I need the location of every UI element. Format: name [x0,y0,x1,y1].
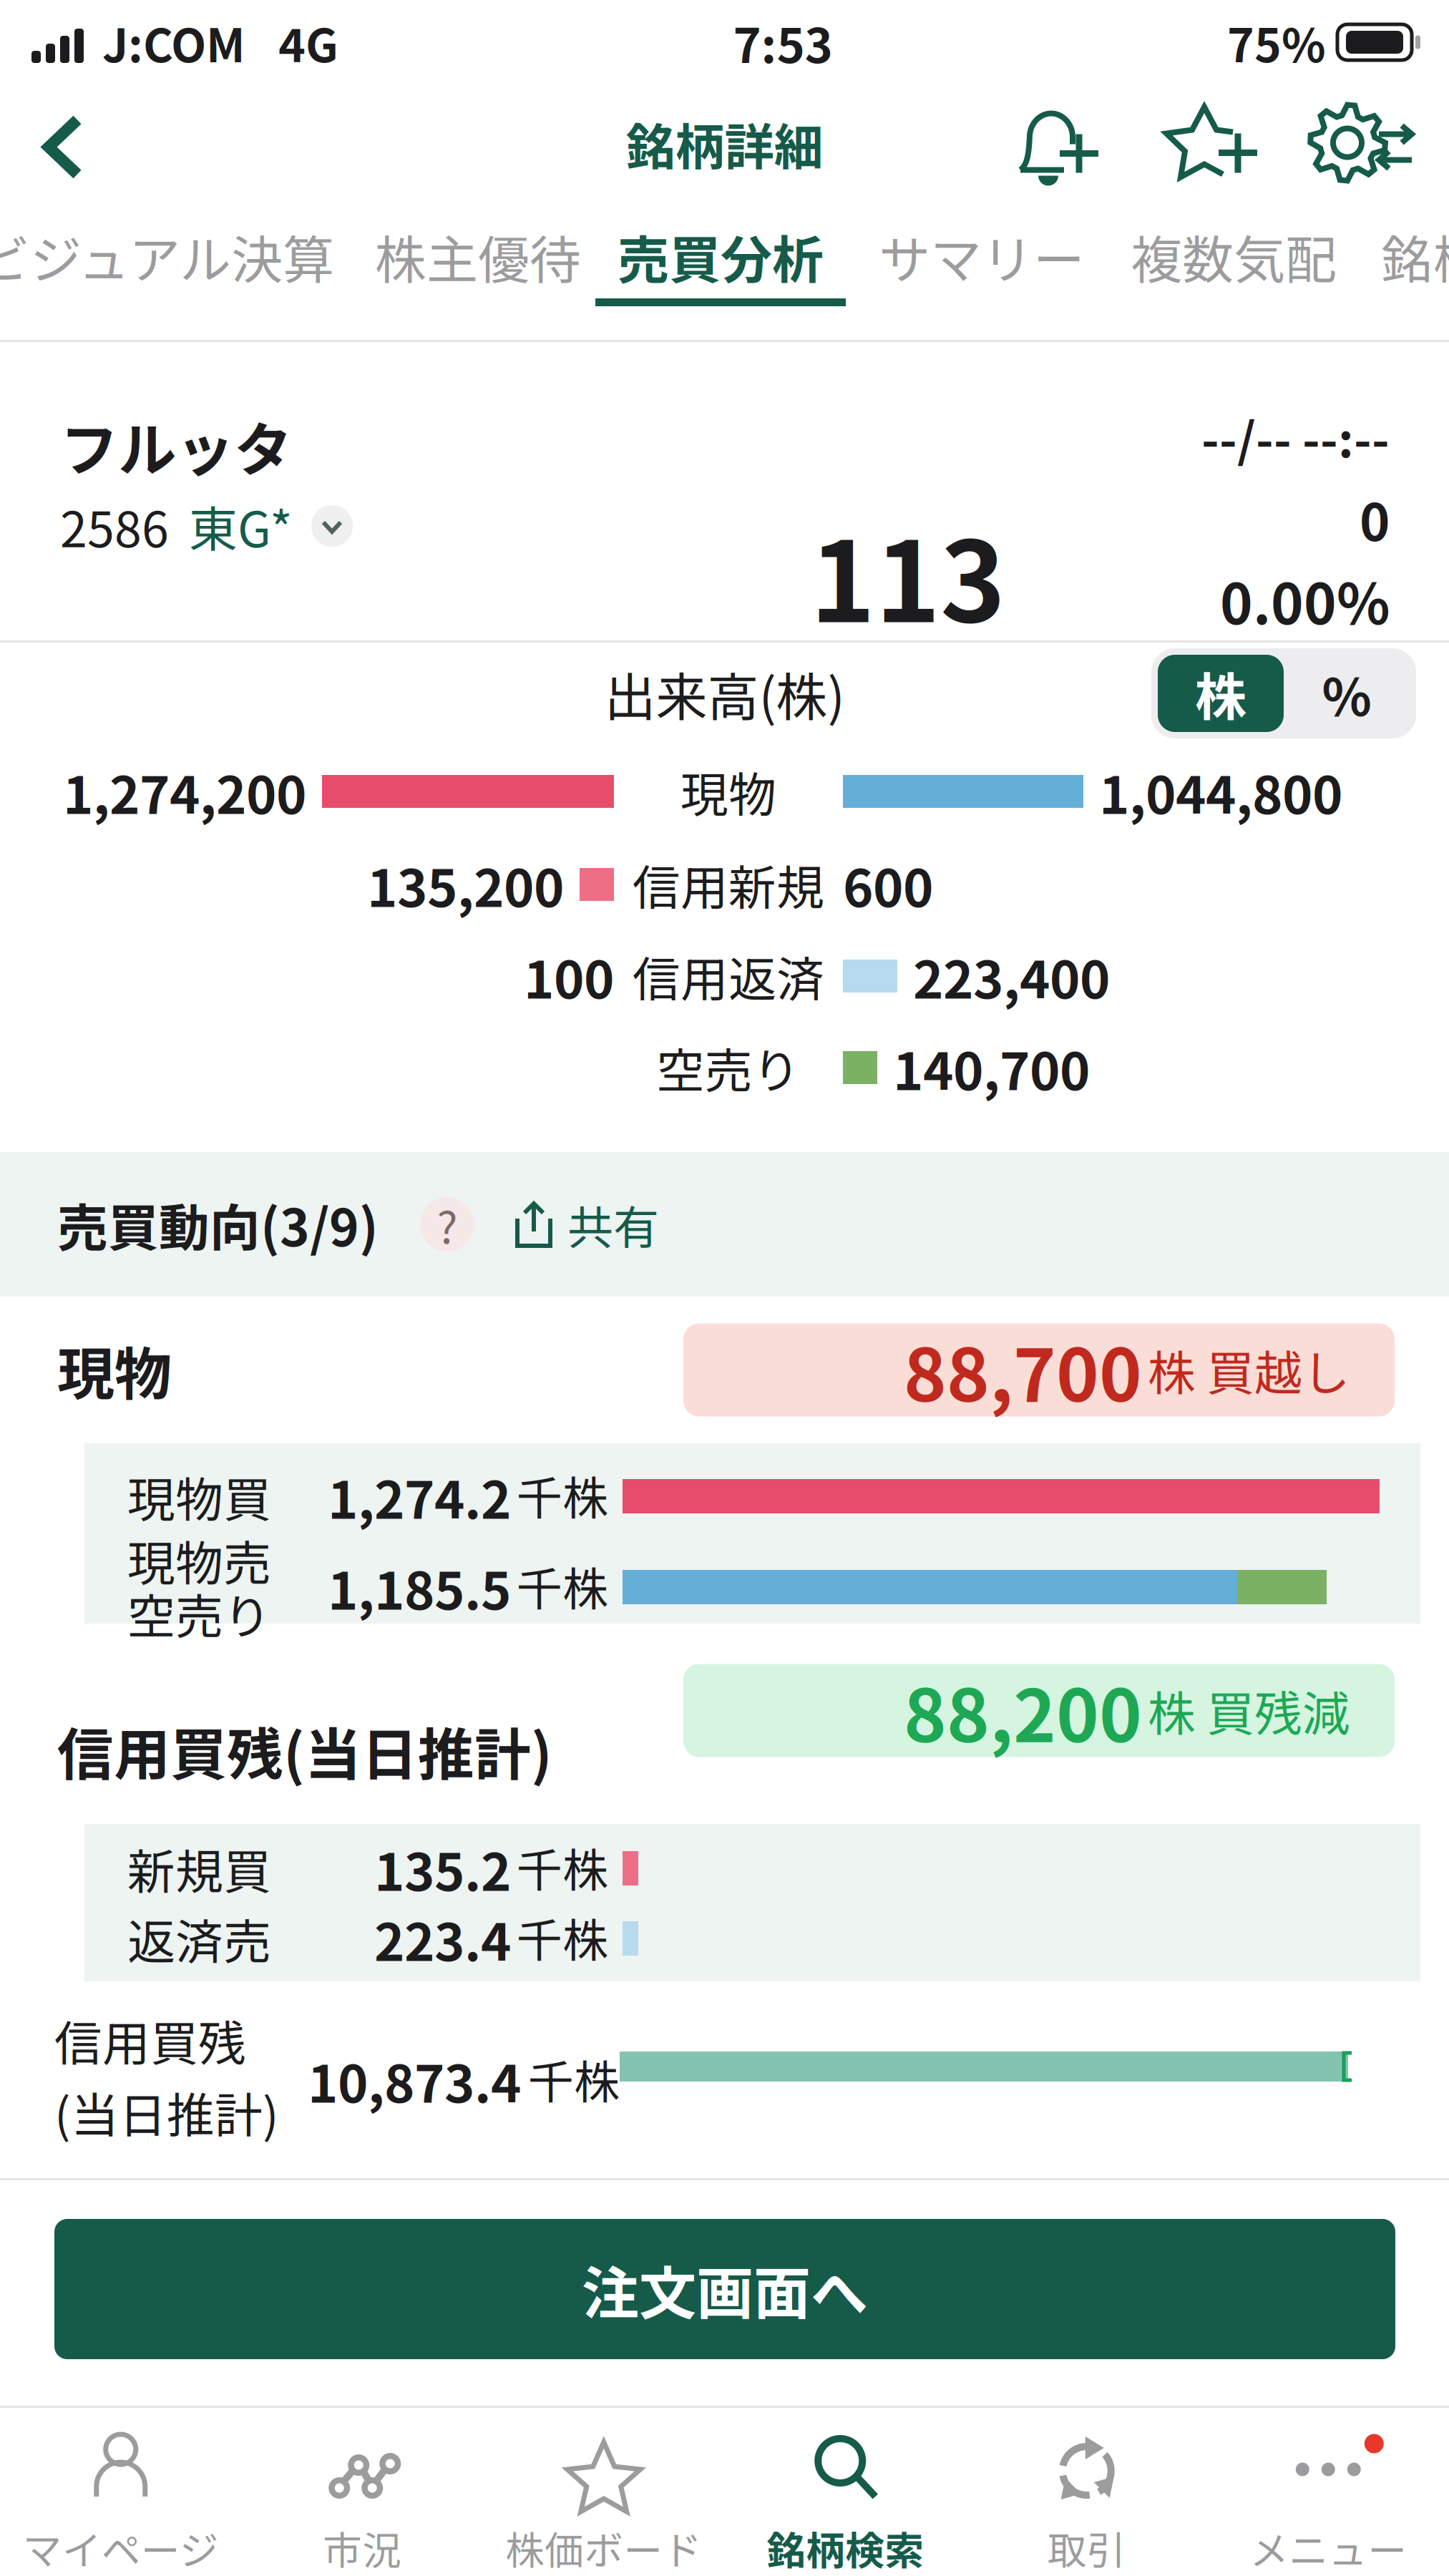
button[interactable]: Market detail [311,505,353,547]
staticText: (当日推計) [54,2078,279,2147]
staticText: 1,274.2 [328,1459,511,1534]
button[interactable]: % [1284,655,1410,732]
staticText: 株 [1195,656,1246,731]
staticText: 4G [278,9,338,75]
staticText: サマリー [879,219,1085,294]
staticText: 1,274,200 [63,754,306,829]
staticText: 銘柄 [1381,219,1449,294]
staticText: 1,044,800 [1099,754,1342,829]
staticText: 千株 [517,1904,608,1970]
button[interactable]: ビジュアル決算 [0,214,334,298]
staticText: 88,700 [904,1317,1142,1422]
staticText: 千株 [517,1553,608,1619]
staticText: 1,185.5 [328,1550,511,1625]
staticText: 株 買残減 [1148,1676,1350,1745]
button[interactable]: 注文画面へ [54,2219,1395,2359]
button[interactable]: 複数気配 [1131,214,1337,298]
staticText: 135.2 [374,1831,511,1906]
staticText: 出来高(株) [604,656,845,731]
staticText: マイページ [23,2519,219,2576]
staticText: 現物 [680,757,776,826]
staticText: 135,200 [367,847,564,922]
button[interactable]: 市況 [241,2408,483,2576]
staticText: 信用買残 [54,2006,246,2075]
button[interactable]: Back [14,90,122,197]
staticText: 空売り [657,1033,800,1102]
button[interactable]: マイページ [0,2408,241,2576]
staticText: 注文画面へ [582,2248,868,2330]
button[interactable]: Add alert [1008,90,1116,197]
staticText: 共有 [567,1191,659,1258]
button[interactable]: サマリー [879,214,1085,298]
staticText: ビジュアル決算 [0,219,334,294]
button[interactable]: 株価ボード [483,2408,724,2576]
staticText: 2586 [60,491,169,561]
staticText: 返済売 [127,1904,271,1973]
staticText: 株価ボード [505,2519,702,2576]
staticText: 空売り [127,1579,271,1648]
button[interactable]: Help [420,1193,474,1256]
staticText: 株 買越し [1148,1335,1350,1404]
button[interactable]: 取引 [966,2408,1207,2576]
button[interactable]: Settings [1313,90,1420,197]
button[interactable]: メニュー [1207,2408,1449,2576]
staticText: 140,700 [893,1030,1090,1105]
staticText: 複数気配 [1131,219,1337,294]
staticText: 88,200 [904,1658,1142,1763]
staticText: 銘柄詳細 [626,108,823,179]
staticText: 223.4 [374,1901,511,1976]
staticText: 千株 [528,2046,620,2112]
button[interactable]: 株 [1158,655,1284,732]
staticText: 現物売 [127,1526,271,1595]
staticText: フルッタ [60,404,292,488]
staticText: 現物 [57,1329,172,1411]
button[interactable]: 共有 [510,1191,659,1258]
staticText: 市況 [323,2519,402,2576]
staticText: 600 [843,847,933,922]
button[interactable]: 銘柄検索 [724,2408,966,2576]
staticText: J:COM [102,9,245,75]
staticText: 千株 [517,1462,608,1528]
staticText: % [1322,656,1371,731]
button[interactable]: Add to favourites [1164,90,1272,197]
staticText: 新規買 [127,1834,271,1903]
staticText: 223,400 [913,939,1110,1013]
staticText: 千株 [517,1834,608,1900]
staticText: 売買分析 [618,219,824,294]
staticText: --/-- --:-- [1201,402,1390,471]
staticText: 0 [1360,481,1390,556]
staticText: 現物買 [127,1462,271,1531]
staticText: 東G* [189,491,293,561]
staticText: 100 [524,939,614,1013]
staticText: ? [437,1193,458,1256]
staticText: 取引 [1047,2519,1126,2576]
staticText: 10,873.4 [308,2043,521,2118]
staticText: 信用返済 [633,941,824,1011]
button[interactable]: 売買分析 [595,214,846,336]
staticText: 0.00% [1220,560,1390,640]
staticText: 株主優待 [375,219,581,294]
staticText: 売買動向(3/9) [57,1188,379,1261]
staticText: 75% [1227,9,1326,75]
staticText: 信用新規 [633,850,824,919]
staticText: 113 [810,494,1005,654]
staticText: 7:53 [733,8,833,77]
staticText: メニュー [1250,2519,1407,2576]
staticText: 信用買残(当日推計) [57,1710,552,1791]
button[interactable]: 銘柄 [1381,214,1449,298]
staticText: 銘柄検索 [767,2519,924,2576]
button[interactable]: 株主優待 [375,214,581,298]
